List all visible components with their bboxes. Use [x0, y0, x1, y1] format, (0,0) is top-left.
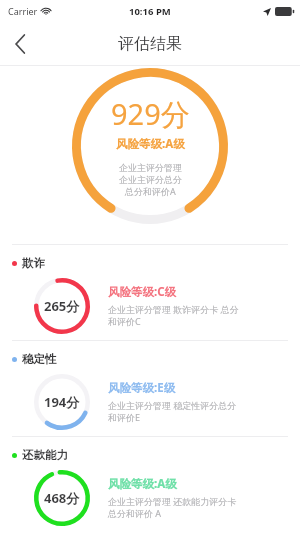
button[interactable]: Back [0, 24, 40, 64]
staticText: 风险等级:A级 [116, 136, 185, 152]
staticText: 稳定性 [22, 352, 57, 366]
staticText: 风险等级:E级 [108, 380, 176, 396]
staticText: 风险等级:C级 [108, 284, 177, 300]
staticText: 企业主评分管理 企业主评分总分 总分和评价A [119, 162, 182, 198]
staticText: 194分 [44, 393, 80, 411]
staticText: 265分 [44, 297, 80, 315]
button[interactable]: 还款能力 [0, 437, 300, 532]
staticText: Carrier [8, 5, 38, 17]
staticText: 欺诈 [22, 256, 45, 270]
staticText: 企业主评分管理 欺诈评分卡 总分 和评价C [108, 303, 239, 328]
button[interactable]: 稳定性 [0, 341, 300, 436]
staticText: 468分 [44, 489, 80, 507]
staticText: 企业主评分管理 稳定性评分总分 和评价E [108, 399, 237, 424]
staticText: 风险等级:A级 [108, 476, 177, 492]
staticText: 929分 [111, 94, 190, 134]
staticText: 还款能力 [22, 448, 68, 462]
staticText: 评估结果 [118, 34, 182, 54]
button[interactable]: 欺诈 [0, 245, 300, 340]
staticText: 10:16 PM [129, 5, 171, 18]
staticText: 企业主评分管理 还款能力评分卡 总分和评价 A [108, 495, 237, 520]
